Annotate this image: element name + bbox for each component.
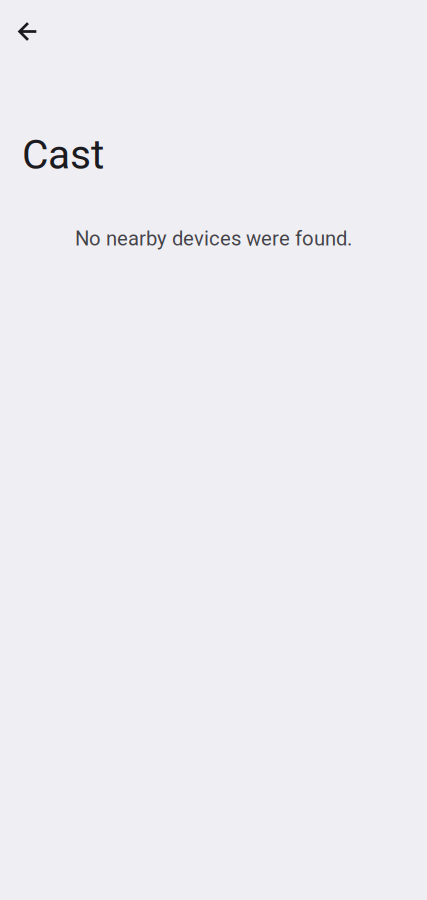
button[interactable]: Back [3, 7, 51, 55]
staticText: No nearby devices were found. [75, 227, 352, 250]
staticText: Cast [22, 131, 104, 179]
